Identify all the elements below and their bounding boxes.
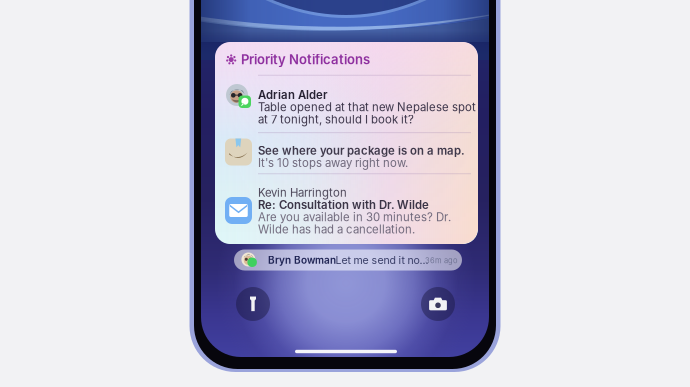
staticText: Priority Notifications (241, 52, 370, 67)
staticText: It's 10 stops away right now. (258, 156, 408, 170)
button[interactable]: Flashlight (236, 287, 270, 321)
staticText: Re: Consultation with Dr. Wilde (258, 198, 429, 212)
staticText: Are you available in 30 minutes? Dr. (258, 210, 451, 224)
staticText: Bryn Bowman (268, 254, 336, 266)
staticText: Adrian Alder (258, 88, 327, 102)
staticText: 36m ago (425, 256, 457, 265)
staticText: Wilde has had a cancellation. (258, 222, 415, 236)
button[interactable]: Camera (421, 287, 455, 321)
staticText: Let me send it no... (335, 254, 428, 266)
button[interactable]: Bryn Bowman (234, 249, 462, 270)
staticText: at 7 tonight, should I book it? (258, 112, 414, 126)
staticText: See where your package is on a map. (258, 144, 465, 157)
staticText: Table opened at that new Nepalese spot (258, 100, 476, 114)
staticText: Kevin Harrington (258, 186, 347, 199)
